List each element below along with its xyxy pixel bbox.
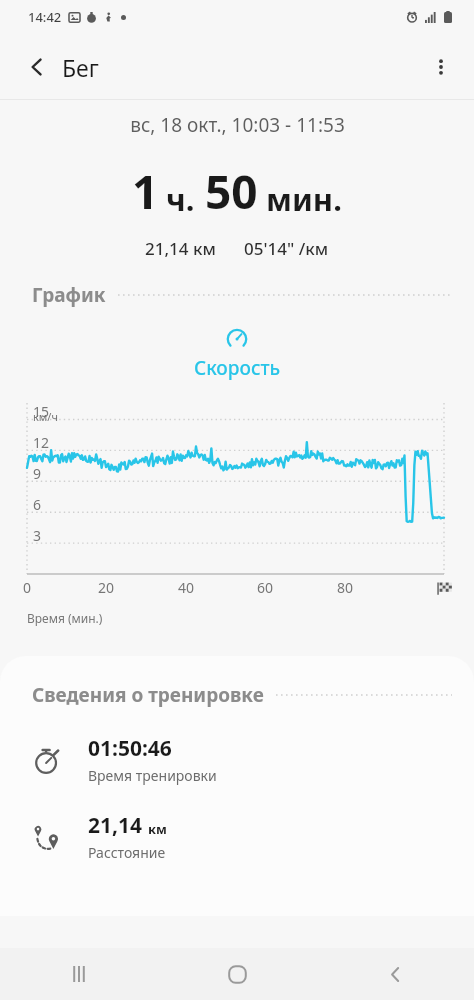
staticText: График: [32, 282, 106, 308]
staticText: Бег: [62, 52, 99, 83]
staticText: мин.: [266, 178, 342, 220]
button[interactable]: Recent apps: [0, 948, 158, 1000]
staticText: 14:42: [28, 8, 62, 26]
staticText: 3: [33, 526, 42, 545]
staticText: 50: [205, 160, 258, 223]
staticText: ч.: [166, 178, 195, 220]
button[interactable]: Distance: [0, 807, 474, 866]
staticText: Сведения о тренировке: [32, 682, 264, 708]
button[interactable]: Скорость: [0, 324, 474, 381]
button[interactable]: Home: [158, 948, 316, 1000]
staticText: вс, 18 окт., 10:03 - 11:53: [130, 112, 345, 138]
other: Distance: [26, 816, 68, 858]
staticText: км: [148, 820, 167, 838]
staticText: 0: [23, 578, 32, 597]
staticText: Время тренировки: [88, 766, 217, 785]
button[interactable]: Back: [14, 44, 60, 90]
staticText: 01:50:46: [88, 734, 172, 763]
staticText: 60: [257, 578, 274, 597]
staticText: 21,14: [88, 811, 143, 840]
staticText: 15: [33, 402, 50, 421]
staticText: 21,14 км: [145, 237, 216, 260]
staticText: 80: [337, 578, 354, 597]
staticText: км/ч: [33, 409, 58, 424]
staticText: Расстояние: [88, 843, 166, 862]
staticText: 20: [98, 578, 115, 597]
button[interactable]: Back: [316, 948, 474, 1000]
other: Workout time: [26, 739, 68, 781]
staticText: 40: [178, 578, 195, 597]
button[interactable]: More options: [418, 44, 464, 90]
button[interactable]: Workout time: [0, 730, 474, 789]
staticText: 6: [33, 495, 42, 514]
staticText: Время (мин.): [27, 610, 103, 626]
staticText: 12: [33, 433, 50, 452]
staticText: 1: [132, 160, 159, 223]
staticText: Скорость: [194, 355, 281, 381]
staticText: 05'14" /км: [244, 237, 329, 260]
staticText: 9: [33, 464, 42, 483]
